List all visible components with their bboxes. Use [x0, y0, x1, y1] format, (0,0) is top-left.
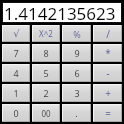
staticText: 9: [74, 47, 80, 59]
staticText: +: [105, 86, 111, 100]
staticText: 1: [13, 87, 19, 99]
button[interactable]: 1: [2, 84, 30, 102]
staticText: 3: [74, 87, 80, 99]
staticText: 1.4142135623: [4, 2, 120, 23]
staticText: 8: [43, 47, 49, 59]
button[interactable]: 6: [62, 64, 91, 82]
button[interactable]: Percent: [62, 25, 91, 42]
staticText: 6: [74, 67, 80, 79]
button[interactable]: Minus: [93, 64, 122, 82]
staticText: 00: [41, 108, 51, 119]
staticText: 0: [13, 107, 19, 119]
staticText: 7: [13, 47, 19, 59]
button[interactable]: 3: [62, 84, 91, 102]
staticText: 4: [13, 67, 19, 79]
staticText: /: [106, 27, 110, 41]
button[interactable]: 7: [2, 44, 30, 62]
button[interactable]: Multiply: [93, 44, 122, 62]
staticText: -: [106, 66, 110, 80]
button[interactable]: 4: [2, 64, 30, 82]
staticText: 5: [43, 67, 49, 79]
staticText: X^2: [39, 28, 53, 39]
button[interactable]: Divide: [93, 25, 122, 42]
button[interactable]: 0: [2, 104, 30, 122]
button[interactable]: Equals: [93, 104, 122, 122]
button[interactable]: 2: [32, 84, 60, 102]
button[interactable]: 8: [32, 44, 60, 62]
staticText: %: [73, 28, 81, 40]
staticText: *: [105, 46, 111, 60]
staticText: √: [13, 28, 20, 40]
button[interactable]: Square: [32, 25, 60, 42]
button[interactable]: 00: [32, 104, 60, 122]
button[interactable]: Plus: [93, 84, 122, 102]
staticText: =: [105, 106, 111, 120]
button[interactable]: 1.4142135623: [2, 2, 122, 23]
staticText: 2: [43, 87, 49, 99]
button[interactable]: 5: [32, 64, 60, 82]
button[interactable]: 9: [62, 44, 91, 62]
staticText: .: [75, 107, 78, 119]
button[interactable]: Square root: [2, 25, 30, 42]
button[interactable]: Decimal point: [62, 104, 91, 122]
